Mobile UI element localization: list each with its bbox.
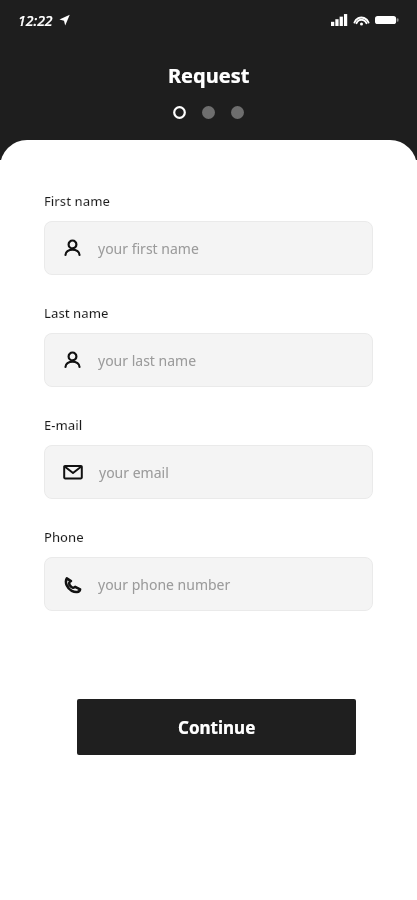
staticText: E-mail	[44, 416, 83, 434]
button[interactable]: your last name	[44, 333, 373, 387]
staticText: 12:22	[18, 11, 53, 30]
staticText: your first name	[98, 239, 199, 258]
staticText: your email	[99, 463, 169, 482]
staticText: Last name	[44, 304, 109, 322]
staticText: Request	[168, 62, 250, 89]
button[interactable]: your email	[44, 445, 373, 499]
staticText: your last name	[98, 351, 197, 370]
staticText: Continue	[178, 716, 256, 739]
staticText: Phone	[44, 528, 84, 546]
button[interactable]: your phone number	[44, 557, 373, 611]
staticText: First name	[44, 192, 110, 210]
button[interactable]: your first name	[44, 221, 373, 275]
staticText: your phone number	[98, 575, 231, 594]
button[interactable]: Continue	[77, 699, 356, 755]
